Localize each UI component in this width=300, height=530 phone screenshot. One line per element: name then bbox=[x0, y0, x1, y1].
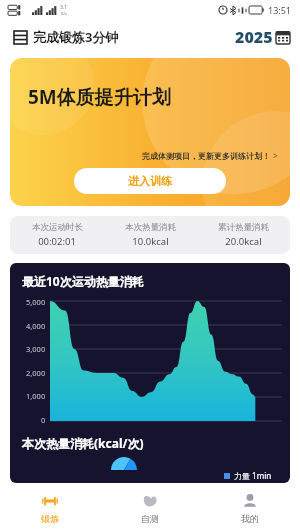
staticText: K/s bbox=[61, 11, 67, 16]
staticText: 本次热量消耗(kcal/次) bbox=[22, 435, 144, 451]
button[interactable]: 2025 bbox=[235, 26, 290, 48]
staticText: 10.0kcal bbox=[132, 235, 169, 248]
staticText: 最近10次运动热量消耗 bbox=[22, 273, 144, 289]
staticText: 完成体测项目，更新更多训练计划！ bbox=[142, 151, 270, 161]
button[interactable]: 5M体质提升计划 bbox=[10, 58, 290, 206]
staticText: 5,000 bbox=[26, 297, 46, 307]
staticText: 进入训练 bbox=[128, 174, 172, 188]
staticText: 3,000 bbox=[26, 344, 46, 354]
button[interactable]: 锻炼 bbox=[0, 486, 100, 530]
staticText: 力量 1min bbox=[234, 470, 272, 481]
button[interactable]: 累计热量消耗 bbox=[197, 216, 290, 254]
button[interactable]: 本次热量消耗 bbox=[104, 216, 197, 254]
button[interactable]: 我的 bbox=[200, 486, 300, 530]
staticText: 完成锻炼3分钟 bbox=[33, 28, 119, 46]
button[interactable]: Menu bbox=[10, 27, 30, 47]
staticText: 00:02:01 bbox=[38, 235, 76, 248]
staticText: 0 bbox=[41, 415, 46, 425]
staticText: > bbox=[273, 150, 278, 161]
staticText: 累计热量消耗 bbox=[218, 222, 269, 233]
staticText: 锻炼 bbox=[41, 513, 59, 524]
staticText: 3.1 bbox=[60, 4, 68, 11]
staticText: 20.0kcal bbox=[225, 235, 262, 248]
staticText: 2,000 bbox=[26, 368, 46, 378]
staticText: 1,000 bbox=[26, 391, 46, 401]
staticText: 自测 bbox=[141, 513, 159, 524]
button[interactable]: 本次运动时长 bbox=[10, 216, 104, 254]
staticText: 我的 bbox=[241, 513, 259, 524]
button[interactable]: 完成体测项目，更新更多训练计划！ bbox=[142, 150, 278, 161]
staticText: 本次运动时长 bbox=[32, 222, 83, 233]
staticText: 13:51 bbox=[268, 4, 292, 16]
staticText: 2025 bbox=[235, 26, 273, 48]
button[interactable]: 自测 bbox=[100, 486, 200, 530]
staticText: 4,000 bbox=[26, 321, 46, 331]
staticText: 5M体质提升计划 bbox=[28, 84, 171, 110]
button[interactable]: 进入训练 bbox=[74, 168, 226, 194]
staticText: 本次热量消耗 bbox=[125, 222, 176, 233]
